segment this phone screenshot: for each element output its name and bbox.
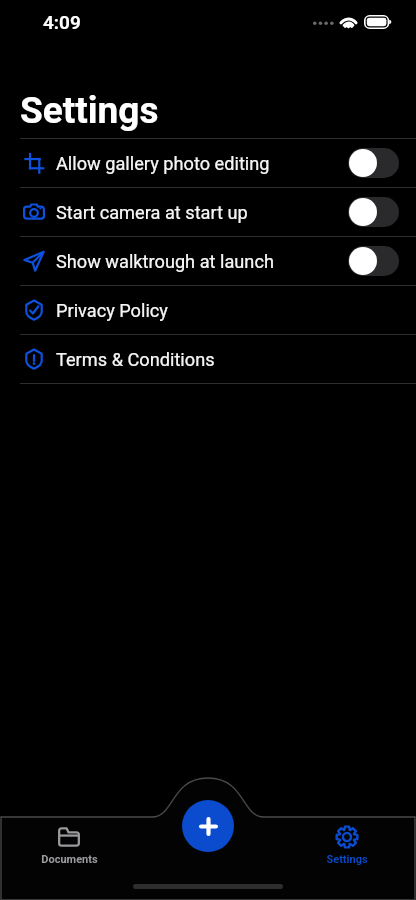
- staticText: Allow gallery photo editing: [56, 153, 270, 174]
- staticText: 4:09: [43, 11, 81, 33]
- button[interactable]: Allow gallery photo editing toggle: [348, 148, 399, 178]
- button[interactable]: Add: [182, 800, 234, 852]
- button[interactable]: Show walktrough at launch toggle: [348, 246, 399, 276]
- button[interactable]: Show walktrough at launch: [0, 237, 416, 286]
- staticText: Privacy Policy: [56, 300, 168, 321]
- button[interactable]: Privacy Policy: [0, 286, 416, 335]
- staticText: Terms & Conditions: [56, 349, 215, 370]
- staticText: Settings: [20, 89, 159, 132]
- button[interactable]: Start camera at start up: [0, 188, 416, 237]
- button[interactable]: Terms & Conditions: [0, 335, 416, 384]
- staticText: Settings: [326, 853, 368, 866]
- button[interactable]: Settings: [277, 825, 416, 866]
- button[interactable]: Allow gallery photo editing: [0, 139, 416, 188]
- button[interactable]: Documents: [0, 825, 138, 866]
- staticText: Show walktrough at launch: [56, 251, 274, 272]
- staticText: Documents: [41, 853, 98, 866]
- button[interactable]: Start camera at start up toggle: [348, 197, 399, 227]
- staticText: Start camera at start up: [56, 202, 248, 223]
